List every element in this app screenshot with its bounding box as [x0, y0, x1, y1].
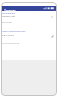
staticText: La Si Do Re Mi Fa Sol: [2, 42, 20, 44]
staticText: TUNING MODE: [2, 12, 15, 14]
button[interactable]: Edit: [50, 34, 54, 38]
staticText: NOTE NAME CONVENTION: [2, 30, 26, 33]
staticText: A B C D E F G: [2, 34, 15, 37]
staticText: 53 commas: [2, 21, 12, 24]
button[interactable]: Note name convention: [1, 29, 57, 47]
staticText: Turkish Clas: [2, 15, 15, 18]
staticText: Settings: [6, 8, 16, 11]
button[interactable]: Tuning mode: [1, 11, 57, 23]
button[interactable]: Back: [3, 8, 6, 11]
